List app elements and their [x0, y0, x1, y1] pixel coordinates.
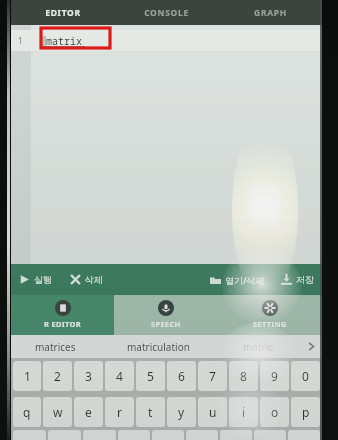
staticText: matric [243, 340, 274, 354]
staticText: 2 [54, 368, 61, 384]
staticText: r [117, 404, 122, 420]
button[interactable] [13, 430, 46, 440]
button[interactable]: EDITOR [11, 0, 114, 25]
staticText: o [271, 404, 279, 420]
staticText: 8 [240, 368, 247, 384]
button[interactable]: matric [217, 335, 300, 358]
button[interactable]: o [260, 397, 289, 427]
button[interactable]: CONSOLE [114, 0, 218, 25]
button[interactable]: u [198, 397, 227, 427]
staticText: 열기/삭제 [225, 274, 265, 286]
button[interactable]: e [74, 397, 103, 427]
staticText: e [85, 404, 92, 420]
button[interactable] [48, 430, 81, 440]
button[interactable]: GRAPH [218, 0, 322, 25]
button[interactable]: p [291, 397, 320, 427]
button[interactable]: 5 [136, 361, 165, 391]
button[interactable]: More suggestions [300, 335, 322, 358]
button[interactable]: 1 [11, 30, 322, 51]
button[interactable]: 0 [291, 361, 320, 391]
staticText: 저장 [296, 274, 314, 285]
button[interactable]: 1 [13, 361, 41, 391]
staticText: SPEECH [151, 319, 181, 329]
button[interactable]: w [43, 397, 72, 427]
button[interactable]: 4 [105, 361, 134, 391]
button[interactable]: SETTING [218, 295, 322, 335]
button[interactable]: matrices [11, 335, 99, 358]
button[interactable]: 저장 [279, 271, 316, 288]
staticText: i [242, 404, 246, 420]
button[interactable]: R EDITOR [11, 295, 114, 335]
staticText: 실행 [34, 274, 52, 285]
button[interactable]: 9 [260, 361, 289, 391]
staticText: matrices [35, 340, 76, 354]
staticText: t [148, 404, 153, 420]
staticText: GRAPH [254, 7, 287, 19]
button[interactable] [254, 430, 286, 440]
staticText: p [302, 404, 310, 420]
staticText: 5 [147, 368, 154, 384]
button[interactable]: 2 [43, 361, 72, 391]
staticText: 0 [302, 368, 309, 384]
button[interactable]: 실행 [17, 271, 54, 288]
button[interactable]: y [167, 397, 196, 427]
button[interactable] [152, 430, 184, 440]
button[interactable] [288, 430, 320, 440]
button[interactable]: 7 [198, 361, 227, 391]
staticText: u [209, 404, 217, 420]
staticText: 7 [209, 368, 216, 384]
button[interactable]: i [229, 397, 258, 427]
button[interactable]: SPEECH [114, 295, 218, 335]
button[interactable]: t [136, 397, 165, 427]
button[interactable]: 8 [229, 361, 258, 391]
button[interactable]: q [13, 397, 41, 427]
button[interactable]: 3 [74, 361, 103, 391]
staticText: 6 [178, 368, 185, 384]
staticText: 1 [24, 368, 31, 384]
staticText: EDITOR [45, 7, 81, 19]
staticText: y [178, 404, 185, 420]
staticText: w [53, 404, 63, 420]
staticText: SETTING [253, 319, 287, 329]
staticText: 9 [271, 368, 278, 384]
button[interactable] [186, 430, 218, 440]
button[interactable] [83, 430, 116, 440]
staticText: 삭제 [85, 274, 103, 285]
button[interactable]: r [105, 397, 134, 427]
staticText: matrix [46, 34, 82, 48]
staticText: CONSOLE [144, 7, 189, 19]
staticText: R EDITOR [44, 319, 81, 329]
staticText: q [23, 404, 31, 420]
button[interactable] [118, 430, 150, 440]
button[interactable]: 6 [167, 361, 196, 391]
button[interactable]: 열기/삭제 [208, 271, 267, 289]
staticText: 4 [116, 368, 123, 384]
button[interactable]: matriculation [99, 335, 217, 358]
button[interactable] [220, 430, 252, 440]
button[interactable]: 삭제 [68, 271, 105, 288]
staticText: 1 [18, 35, 23, 46]
staticText: 3 [85, 368, 92, 384]
staticText: matriculation [127, 340, 190, 354]
